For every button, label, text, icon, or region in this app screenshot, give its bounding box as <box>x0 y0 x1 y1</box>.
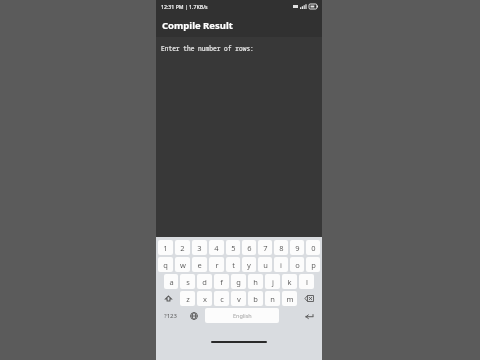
staticText: w <box>180 260 186 270</box>
staticText: 6 <box>247 243 252 253</box>
button[interactable]: g <box>231 274 246 289</box>
staticText: t <box>232 260 235 270</box>
staticText: q <box>163 260 168 270</box>
staticText: p <box>311 260 316 270</box>
button[interactable]: b <box>248 291 263 306</box>
staticText: i <box>280 260 282 270</box>
staticText: 5 <box>231 243 236 253</box>
staticText: 7 <box>263 243 268 253</box>
staticText: s <box>186 277 190 287</box>
button[interactable]: y <box>242 257 256 272</box>
button[interactable]: o <box>290 257 304 272</box>
staticText: a <box>169 277 174 287</box>
button[interactable]: j <box>265 274 280 289</box>
button[interactable]: Shift <box>158 290 178 307</box>
button[interactable]: ?123 <box>158 307 183 324</box>
button[interactable]: i <box>274 257 288 272</box>
staticText: e <box>197 260 202 270</box>
button[interactable]: 4 <box>209 240 224 255</box>
staticText: j <box>272 277 274 287</box>
button[interactable]: d <box>197 274 212 289</box>
button[interactable]: m <box>282 291 297 306</box>
staticText: Enter the number of rows: <box>161 44 254 52</box>
button[interactable]: r <box>209 257 224 272</box>
staticText: r <box>215 260 219 270</box>
button[interactable]: k <box>282 274 297 289</box>
staticText: 3 <box>197 243 202 253</box>
button[interactable]: 3 <box>192 240 207 255</box>
staticText: o <box>295 260 300 270</box>
button[interactable]: 7 <box>258 240 272 255</box>
button[interactable]: f <box>214 274 229 289</box>
button[interactable]: c <box>214 291 229 306</box>
button[interactable]: 2 <box>175 240 190 255</box>
staticText: x <box>203 294 207 304</box>
button[interactable]: 8 <box>274 240 288 255</box>
staticText: u <box>263 260 268 270</box>
button[interactable]: Change language <box>185 307 203 324</box>
button[interactable]: e <box>192 257 207 272</box>
staticText: b <box>253 294 258 304</box>
staticText: n <box>270 294 275 304</box>
staticText: 8 <box>279 243 284 253</box>
staticText: 2 <box>180 243 185 253</box>
staticText: g <box>236 277 241 287</box>
staticText: k <box>287 277 292 287</box>
button[interactable]: n <box>265 291 280 306</box>
button[interactable]: t <box>226 257 240 272</box>
staticText: m <box>286 294 294 304</box>
button[interactable]: p <box>306 257 320 272</box>
button[interactable]: x <box>197 291 212 306</box>
button[interactable]: s <box>180 274 195 289</box>
button[interactable]: 6 <box>242 240 256 255</box>
staticText: z <box>186 294 190 304</box>
button[interactable]: 9 <box>290 240 304 255</box>
staticText: d <box>202 277 207 287</box>
staticText: English <box>233 312 252 319</box>
button[interactable]: z <box>180 291 195 306</box>
button[interactable]: l <box>299 274 314 289</box>
staticText: 9 <box>295 243 300 253</box>
staticText: f <box>220 277 223 287</box>
staticText: 1 <box>163 243 168 253</box>
staticText: 4 <box>214 243 219 253</box>
button[interactable]: 1 <box>158 240 173 255</box>
button[interactable]: 5 <box>226 240 240 255</box>
staticText: ?123 <box>164 312 177 320</box>
button[interactable]: English <box>205 308 279 323</box>
button[interactable]: Backspace <box>299 290 320 307</box>
button[interactable]: q <box>158 257 173 272</box>
button[interactable]: u <box>258 257 272 272</box>
button[interactable]: w <box>175 257 190 272</box>
staticText: Compile Result <box>162 19 233 32</box>
button[interactable]: v <box>231 291 246 306</box>
button[interactable]: h <box>248 274 263 289</box>
button[interactable]: a <box>164 274 178 289</box>
staticText: 0 <box>311 243 316 253</box>
button[interactable]: 0 <box>306 240 320 255</box>
staticText: y <box>247 260 251 270</box>
staticText: c <box>220 294 224 304</box>
staticText: v <box>237 294 241 304</box>
staticText: h <box>253 277 258 287</box>
button[interactable]: Enter <box>297 307 320 324</box>
staticText: l <box>306 277 308 287</box>
staticText: 12:31 PM | 1.7KB/s <box>161 3 208 10</box>
